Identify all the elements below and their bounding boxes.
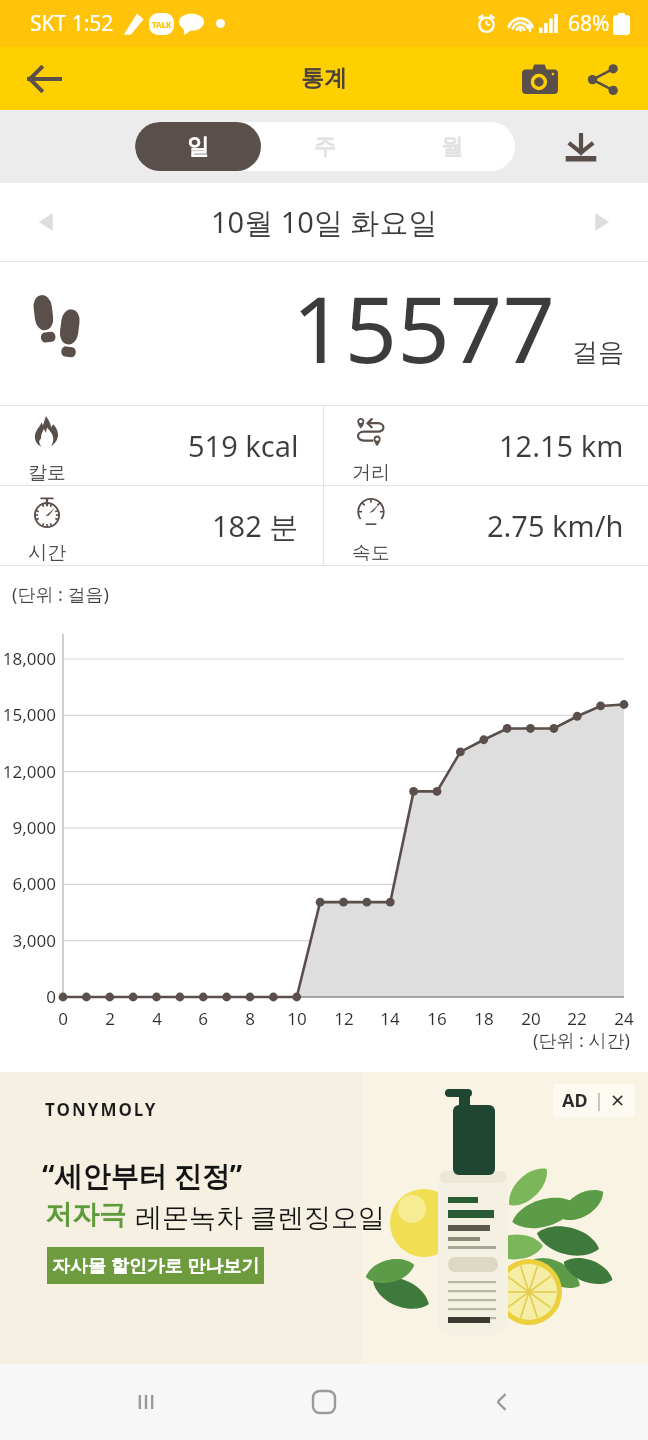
- button[interactable]: Home: [292, 1370, 356, 1434]
- staticText: 20: [511, 1007, 551, 1030]
- staticText: 10월 10일 화요일: [211, 202, 438, 242]
- staticText: |: [594, 1088, 604, 1113]
- button[interactable]: 칼로: [0, 406, 323, 485]
- staticText: 18,000: [0, 647, 56, 670]
- staticText: 일: [187, 133, 209, 161]
- staticText: 거리: [352, 461, 390, 485]
- staticText: 시간: [28, 541, 66, 565]
- button[interactable]: TONYMOLY: [0, 1072, 648, 1364]
- staticText: 레몬녹차 클렌징오일: [135, 1198, 386, 1235]
- staticText: (단위 : 시간): [533, 1028, 630, 1053]
- button[interactable]: Camera: [512, 51, 568, 107]
- staticText: 통계: [301, 64, 347, 93]
- button[interactable]: 거리: [324, 406, 648, 485]
- staticText: 월: [441, 133, 463, 161]
- button[interactable]: Back: [18, 52, 71, 105]
- staticText: ✕: [610, 1090, 626, 1111]
- staticText: 14: [370, 1007, 410, 1030]
- staticText: 주: [314, 133, 336, 161]
- staticText: 10: [277, 1007, 317, 1030]
- button[interactable]: Close ad: [562, 1088, 626, 1113]
- staticText: 저자극: [45, 1198, 126, 1232]
- staticText: 12,000: [0, 760, 56, 783]
- staticText: TONYMOLY: [45, 1098, 158, 1121]
- button[interactable]: Share: [575, 51, 631, 107]
- staticText: 24: [604, 1007, 644, 1030]
- staticText: 4: [137, 1007, 177, 1030]
- staticText: 15,000: [0, 703, 56, 726]
- staticText: (단위 : 걸음): [12, 582, 109, 607]
- button[interactable]: Previous day: [22, 198, 70, 246]
- button[interactable]: 일: [135, 122, 261, 171]
- staticText: 2.75 km/h: [487, 506, 624, 545]
- staticText: 22: [557, 1007, 597, 1030]
- staticText: 속도: [352, 541, 390, 565]
- staticText: 2: [90, 1007, 130, 1030]
- button[interactable]: Download: [554, 120, 607, 173]
- button[interactable]: 자사몰 할인가로 만나보기: [47, 1247, 264, 1284]
- button[interactable]: Back: [470, 1370, 534, 1434]
- staticText: 519 kcal: [188, 426, 299, 465]
- staticText: AD: [562, 1088, 588, 1113]
- staticText: TALK: [152, 19, 172, 30]
- staticText: “세안부터 진정”: [42, 1156, 243, 1194]
- staticText: 182 분: [212, 506, 299, 546]
- button[interactable]: 주: [261, 122, 388, 171]
- staticText: 6,000: [0, 872, 56, 895]
- staticText: 68%: [568, 9, 610, 38]
- staticText: 걸음: [572, 336, 624, 369]
- button[interactable]: 월: [388, 122, 515, 171]
- staticText: 8: [230, 1007, 270, 1030]
- staticText: 9,000: [0, 816, 56, 839]
- staticText: 12.15 km: [499, 426, 624, 465]
- staticText: 15577: [292, 265, 556, 390]
- staticText: 칼로: [28, 461, 66, 485]
- staticText: SKT 1:52: [30, 9, 114, 38]
- button[interactable]: 시간: [0, 486, 323, 565]
- staticText: 0: [43, 1007, 83, 1030]
- staticText: 6: [183, 1007, 223, 1030]
- staticText: 16: [417, 1007, 457, 1030]
- button[interactable]: 속도: [324, 486, 648, 565]
- staticText: 12: [324, 1007, 364, 1030]
- staticText: 0: [0, 985, 56, 1008]
- staticText: 3,000: [0, 929, 56, 952]
- staticText: 18: [464, 1007, 504, 1030]
- button[interactable]: Next day: [578, 198, 626, 246]
- staticText: 자사몰 할인가로 만나보기: [52, 1253, 260, 1278]
- button[interactable]: Recents: [114, 1370, 178, 1434]
